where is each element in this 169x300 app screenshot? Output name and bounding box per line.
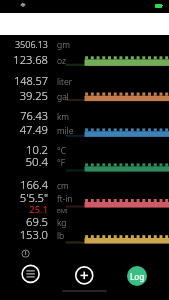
staticText: 50.4 <box>0 154 48 170</box>
button[interactable]: 47.49 <box>0 122 169 137</box>
button[interactable]: Add <box>74 265 95 286</box>
button[interactable]: 50.4 <box>0 154 169 170</box>
button[interactable]: Log <box>127 266 147 286</box>
staticText: cm <box>57 180 69 192</box>
staticText: 166.4 <box>0 177 48 192</box>
staticText: 25.1 <box>0 203 48 216</box>
staticText: km <box>57 111 69 123</box>
staticText: lb <box>57 230 65 242</box>
staticText: gal <box>57 91 69 103</box>
button[interactable]: 166.4 <box>0 177 169 192</box>
staticText: kg <box>57 217 67 229</box>
button[interactable]: 69.5 <box>0 214 169 229</box>
button[interactable]: 148.57 <box>0 73 169 88</box>
staticText: 153.0 <box>0 227 48 242</box>
staticText: liter <box>57 76 73 88</box>
button[interactable]: 5'5.5" <box>0 190 169 205</box>
staticText: 3506.13 <box>0 38 48 50</box>
staticText: Log <box>130 271 145 282</box>
staticText: 10.2 <box>0 142 48 157</box>
button[interactable]: 3506.13 <box>0 38 169 50</box>
staticText: ft-in <box>57 193 73 205</box>
staticText: mile <box>57 125 74 137</box>
button[interactable]: 10.2 <box>0 142 169 157</box>
staticText: gm <box>57 39 70 51</box>
staticText: 39.25 <box>0 88 48 103</box>
staticText: 5'5.5" <box>0 190 48 205</box>
staticText: °F <box>57 157 66 169</box>
button[interactable]: 153.0 <box>0 227 169 242</box>
button[interactable]: 76.43 <box>0 108 169 123</box>
button[interactable]: Menu <box>20 263 41 284</box>
staticText: oz <box>57 55 66 67</box>
staticText: BMI <box>57 207 68 215</box>
staticText: °C <box>57 145 67 157</box>
staticText: 123.68 <box>0 52 48 67</box>
button[interactable]: 25.1 <box>0 203 169 216</box>
button[interactable]: Power <box>20 248 31 259</box>
staticText: 76.43 <box>0 108 48 123</box>
button[interactable]: 39.25 <box>0 88 169 103</box>
staticText: 47.49 <box>0 122 48 137</box>
button[interactable]: 123.68 <box>0 52 169 67</box>
staticText: 69.5 <box>0 214 48 229</box>
staticText: 148.57 <box>0 73 48 88</box>
